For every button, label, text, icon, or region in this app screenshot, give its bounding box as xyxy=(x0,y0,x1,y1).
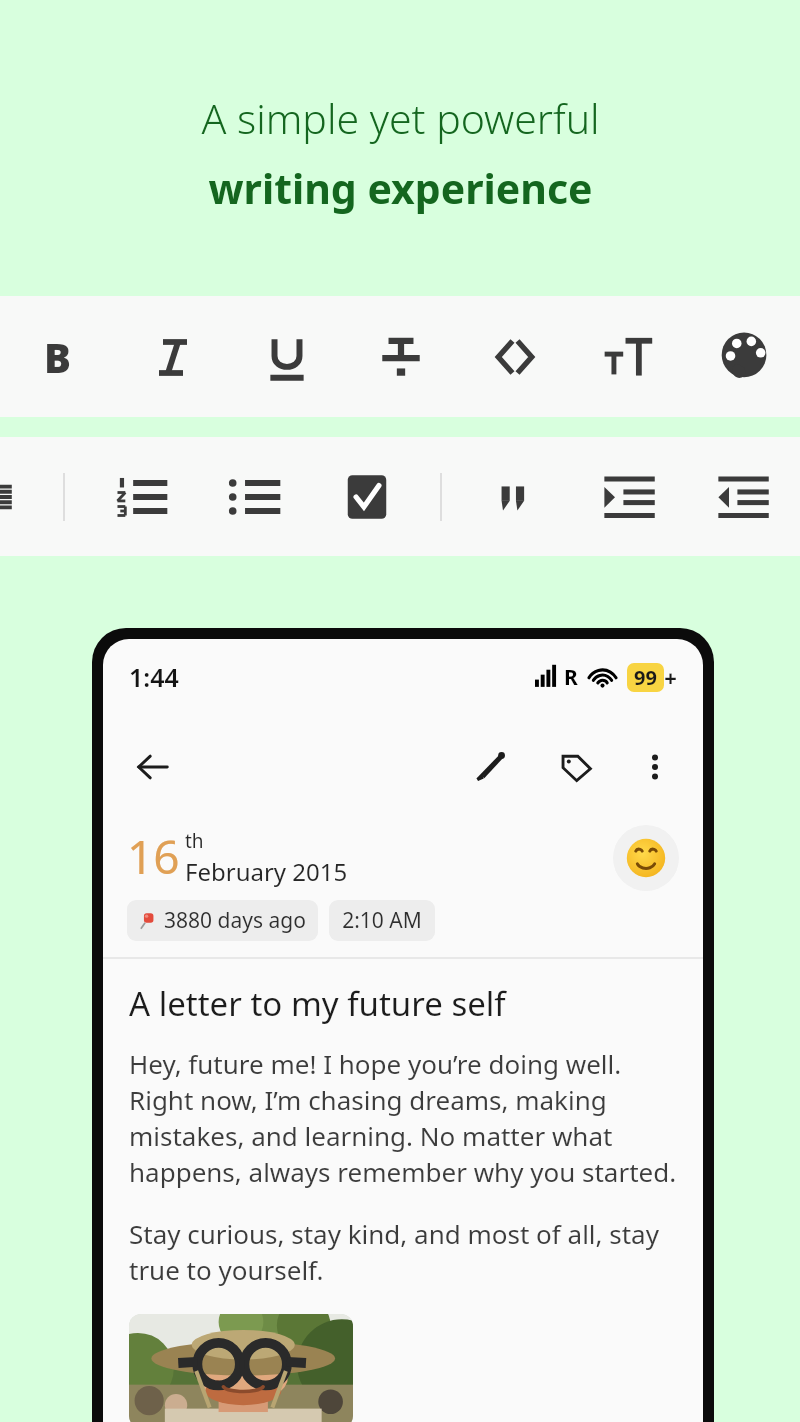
button[interactable]: Edit xyxy=(459,736,521,798)
button[interactable]: Indent xyxy=(572,437,686,556)
button[interactable]: Bulleted list xyxy=(197,437,310,556)
button[interactable]: Checklist xyxy=(310,437,424,556)
staticText: 1:44 xyxy=(129,660,179,694)
staticText: 99 xyxy=(634,664,657,691)
button[interactable]: Tags xyxy=(545,736,607,798)
button[interactable]: 3880 days ago xyxy=(127,900,318,941)
button[interactable]: Underline xyxy=(230,296,344,417)
button[interactable]: Color xyxy=(686,296,800,417)
staticText: February 2015 xyxy=(185,855,348,888)
staticText: B xyxy=(44,330,71,384)
staticText: + xyxy=(664,662,677,692)
button[interactable]: Code xyxy=(458,296,572,417)
button[interactable]: 2:10 AM xyxy=(329,900,435,941)
button[interactable]: Italic xyxy=(115,296,230,417)
button[interactable]: Strikethrough xyxy=(344,296,458,417)
staticText: R xyxy=(564,663,578,692)
button[interactable]: More options xyxy=(627,739,683,795)
button[interactable]: Mood xyxy=(613,825,679,891)
button[interactable]: Back xyxy=(123,737,183,797)
button[interactable]: Bold xyxy=(0,296,115,417)
button[interactable]: Outdent xyxy=(686,437,800,556)
button[interactable]: Photo attachment xyxy=(129,1314,353,1422)
button[interactable]: Text size xyxy=(572,296,686,417)
staticText: Stay curious, stay kind, and most of all… xyxy=(129,1216,677,1288)
staticText: A letter to my future self xyxy=(129,981,677,1026)
staticText: 16 xyxy=(127,825,180,888)
staticText: A simple yet powerful xyxy=(201,90,600,146)
staticText: 3880 days ago xyxy=(164,906,306,935)
staticText: 2:10 AM xyxy=(342,906,422,935)
staticText: Hey, future me! I hope you’re doing well… xyxy=(129,1046,677,1190)
staticText: th xyxy=(185,828,204,854)
button[interactable]: Align xyxy=(0,437,44,556)
button[interactable]: Numbered list xyxy=(84,437,197,556)
button[interactable]: Quote xyxy=(458,437,572,556)
staticText: writing experience xyxy=(208,160,593,216)
